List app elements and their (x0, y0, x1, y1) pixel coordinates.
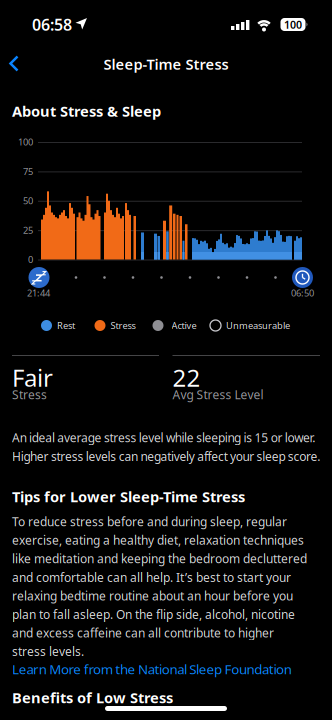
staticText: Benefits of Low Stress (12, 688, 173, 707)
staticText: Sleep-Time Stress (103, 54, 228, 74)
staticText: Rest (57, 319, 75, 332)
staticText: 06:50 (291, 287, 314, 299)
staticText: Learn More from the National Sleep Found… (12, 660, 292, 678)
staticText: 0 (28, 253, 33, 266)
staticText: 06:58 (32, 14, 72, 35)
staticText: 22 (172, 362, 200, 393)
staticText: An ideal average stress level while slee… (12, 430, 320, 464)
staticText: Fair (12, 362, 53, 393)
staticText: 21:44 (27, 287, 50, 299)
staticText: 75 (23, 165, 33, 178)
staticText: About Stress & Sleep (12, 101, 161, 121)
staticText: Active (171, 319, 196, 332)
staticText: Stress (12, 386, 47, 402)
staticText: Tips for Lower Sleep-Time Stress (12, 487, 245, 506)
staticText: 50 (23, 195, 33, 207)
staticText: Avg Stress Level (172, 386, 263, 402)
staticText: To reduce stress before and during sleep… (12, 514, 307, 659)
button[interactable]: Back (2, 41, 30, 85)
staticText: 25 (23, 224, 33, 236)
staticText: 100 (18, 136, 33, 148)
button[interactable]: Learn More from the National Sleep Found… (12, 660, 332, 678)
staticText: 100 (284, 17, 302, 32)
staticText: Unmeasurable (226, 319, 290, 332)
staticText: Stress (110, 319, 135, 332)
